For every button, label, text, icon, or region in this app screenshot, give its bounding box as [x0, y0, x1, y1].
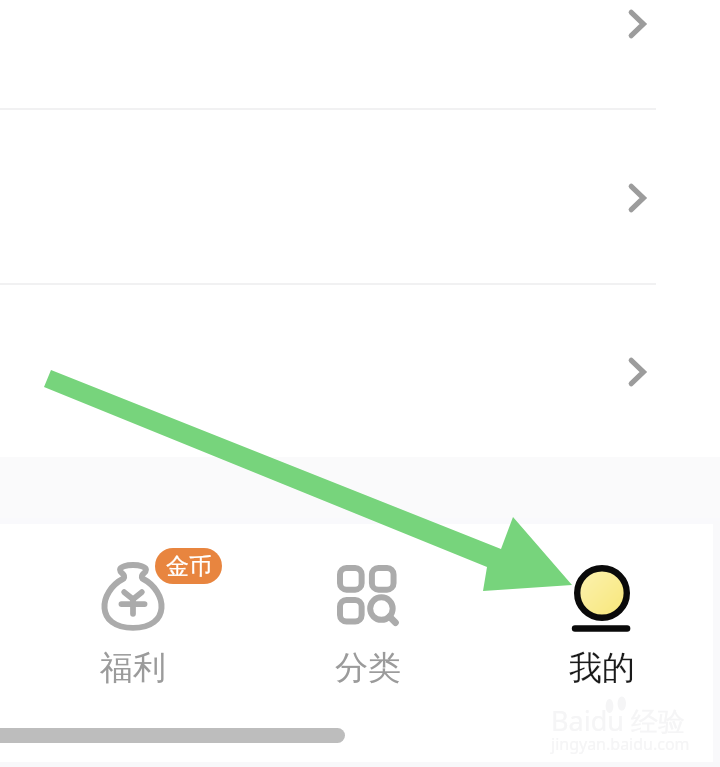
button[interactable]: 金币 [44, 530, 220, 700]
button[interactable]: 我的 [529, 530, 673, 700]
staticText: 金币 [166, 552, 212, 581]
button[interactable]: More [0, 285, 720, 457]
button[interactable]: Account settings [0, 0, 720, 108]
staticText: 福利 [100, 647, 166, 689]
staticText: 我的 [569, 647, 635, 689]
staticText: Baidu 经验 [551, 702, 685, 739]
staticText: jingyan.baidu.com [551, 733, 690, 755]
button[interactable]: 分类 [295, 530, 439, 700]
button[interactable]: Orders [0, 110, 720, 283]
staticText: 分类 [335, 647, 401, 689]
